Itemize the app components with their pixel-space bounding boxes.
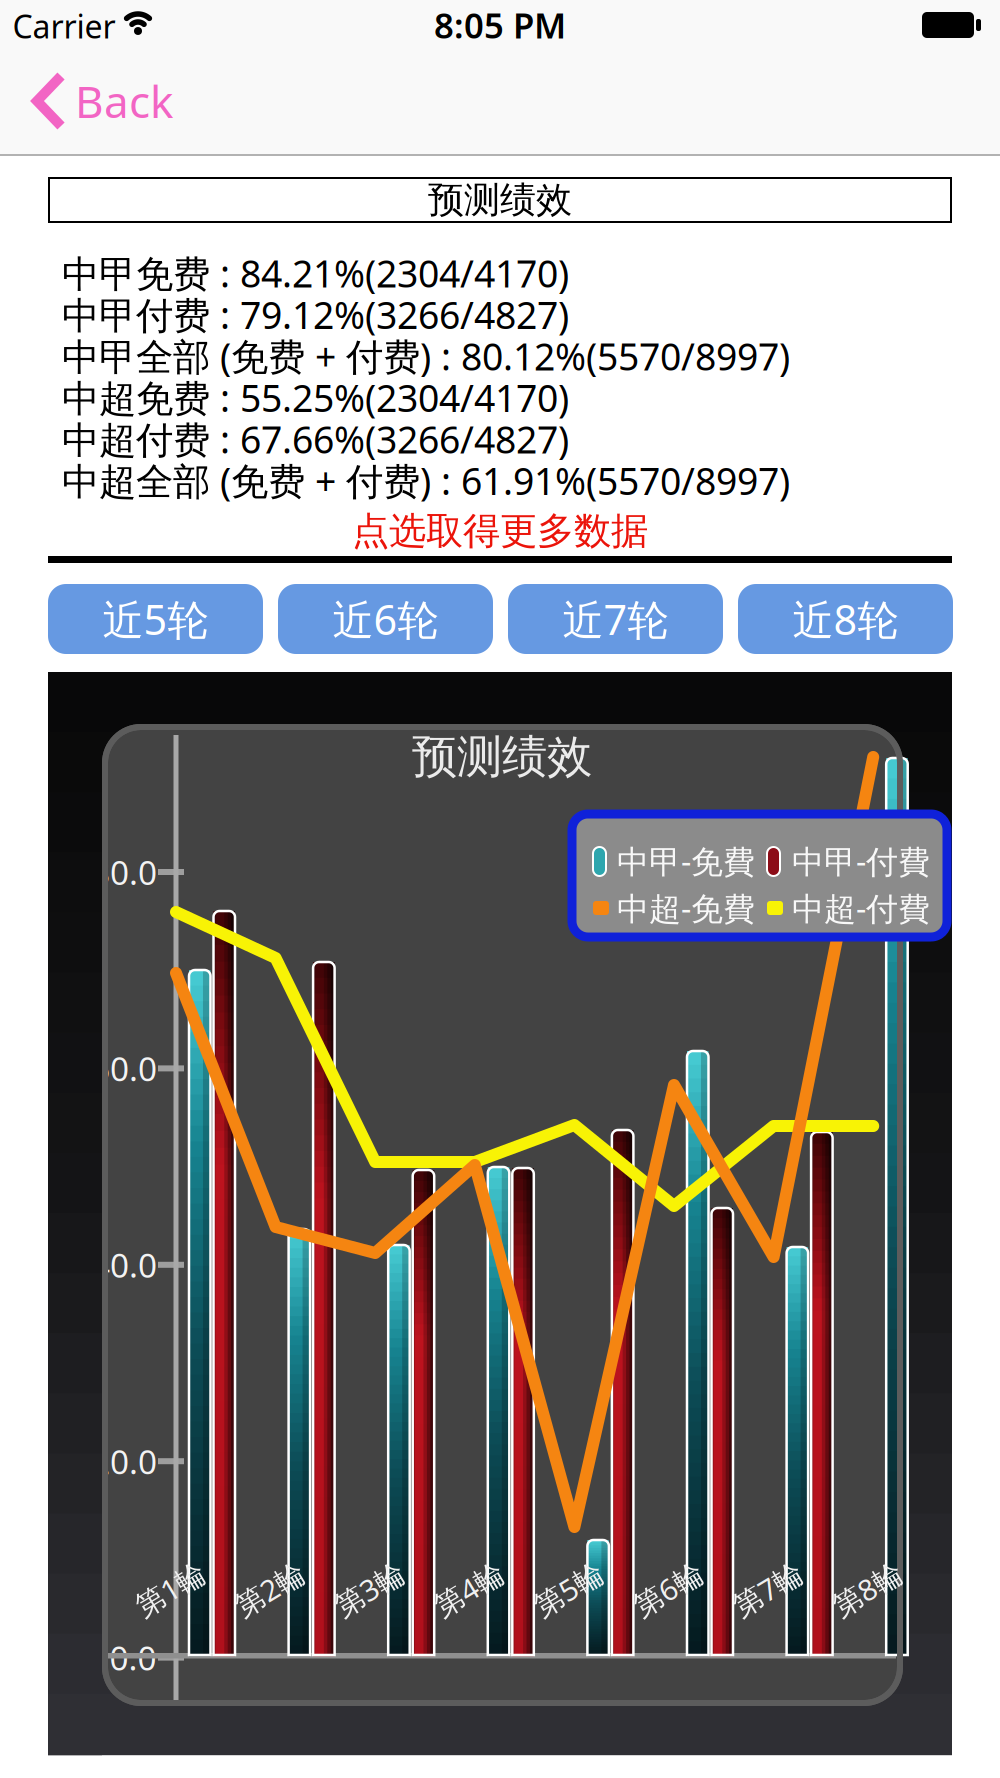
staticText: 点选取得更多数据 [352,508,648,554]
staticText: 60.0 [91,1046,157,1091]
staticText: 中超-付費 [792,887,930,929]
staticText: 近5轮 [102,592,208,646]
button[interactable]: 近8轮 [738,584,953,654]
staticText: 预测绩效 [428,178,572,222]
staticText: 8:05 PM [434,2,566,48]
staticText: 中甲-付費 [792,840,930,882]
staticText: 中甲-免費 [617,840,755,882]
staticText: 中甲免费 : 84.21%(2304/4170) [62,248,569,298]
staticText: 40.0 [91,1243,157,1287]
staticText: 0.0 [109,1635,156,1680]
button[interactable]: 近6轮 [278,584,493,654]
staticText: 80.0 [91,850,157,894]
staticText: 预测绩效 [412,729,592,785]
staticText: 第7輪 [730,1569,805,1608]
staticText: 第1輪 [132,1569,207,1608]
staticText: 中超免费 : 55.25%(2304/4170) [62,373,569,422]
staticText: 第6輪 [630,1569,705,1608]
staticText: 第3輪 [332,1569,407,1608]
staticText: 第5輪 [531,1569,606,1608]
staticText: Back [75,72,173,130]
staticText: 中超付费 : 67.66%(3266/4827) [62,414,569,464]
staticText: 第2輪 [232,1569,307,1608]
button[interactable]: 近7轮 [508,584,723,654]
staticText: 第8輪 [830,1569,905,1608]
staticText: 中甲付费 : 79.12%(3266/4827) [62,290,569,339]
staticText: 近8轮 [792,592,898,646]
staticText: 中甲全部 (免费 + 付费) : 80.12%(5570/8997) [62,331,790,381]
staticText: Carrier [12,5,115,47]
staticText: 20.0 [91,1439,157,1483]
staticText: 近6轮 [332,592,438,646]
button[interactable]: Back [30,73,210,129]
staticText: 近7轮 [562,592,668,646]
button[interactable]: 近5轮 [48,584,263,654]
staticText: 第4輪 [431,1569,506,1608]
staticText: 中超-免費 [617,887,755,929]
staticText: 中超全部 (免费 + 付费) : 61.91%(5570/8997) [62,456,790,505]
